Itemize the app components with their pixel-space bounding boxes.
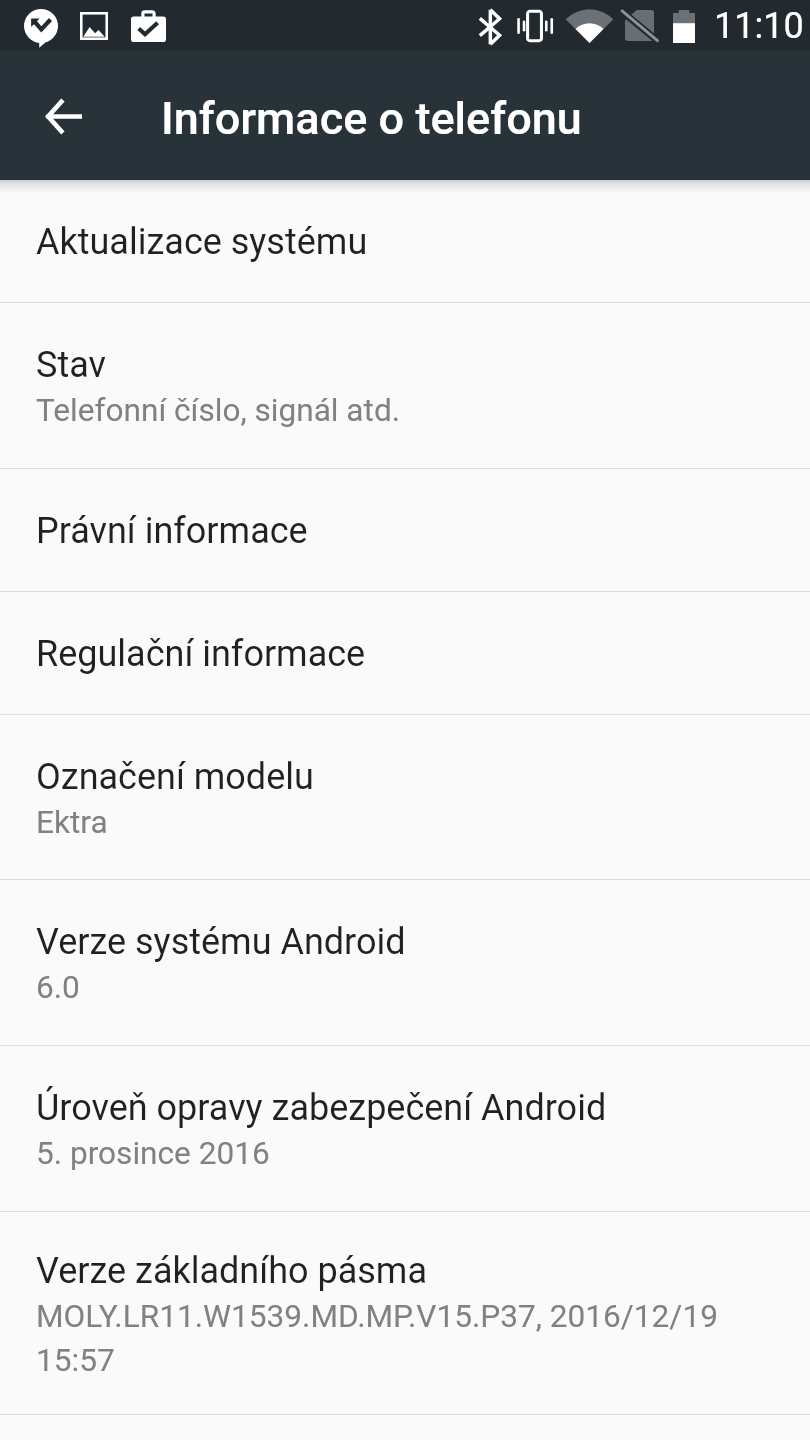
- staticText: Aktualizace systému: [36, 221, 368, 263]
- staticText: Telefonní číslo, signál atd.: [36, 392, 401, 429]
- staticText: MOLY.LR11.W1539.MD.MP.V15.P37, 2016/12/1…: [36, 1298, 758, 1379]
- button[interactable]: Právní informace: [0, 469, 810, 591]
- button[interactable]: Verze základního pásma: [0, 1212, 810, 1414]
- staticText: Označení modelu: [36, 756, 314, 798]
- staticText: Právní informace: [36, 510, 308, 552]
- button[interactable]: Regulační informace: [0, 592, 810, 714]
- staticText: Verze základního pásma: [36, 1250, 427, 1292]
- button[interactable]: Stav: [0, 303, 810, 468]
- staticText: 11:10: [714, 5, 804, 47]
- button[interactable]: Back: [20, 72, 108, 160]
- staticText: Verze systému Android: [36, 921, 406, 963]
- button[interactable]: Aktualizace systému: [0, 180, 810, 302]
- staticText: Informace o telefonu: [161, 92, 582, 145]
- staticText: Ektra: [36, 804, 108, 841]
- button[interactable]: Označení modelu: [0, 715, 810, 879]
- button[interactable]: Úroveň opravy zabezpečení Android: [0, 1046, 810, 1211]
- button[interactable]: Verze systému Android: [0, 880, 810, 1045]
- staticText: 5. prosince 2016: [36, 1135, 270, 1172]
- staticText: 6.0: [36, 969, 80, 1006]
- staticText: Stav: [36, 344, 106, 386]
- staticText: Úroveň opravy zabezpečení Android: [36, 1087, 607, 1129]
- staticText: Regulační informace: [36, 633, 366, 675]
